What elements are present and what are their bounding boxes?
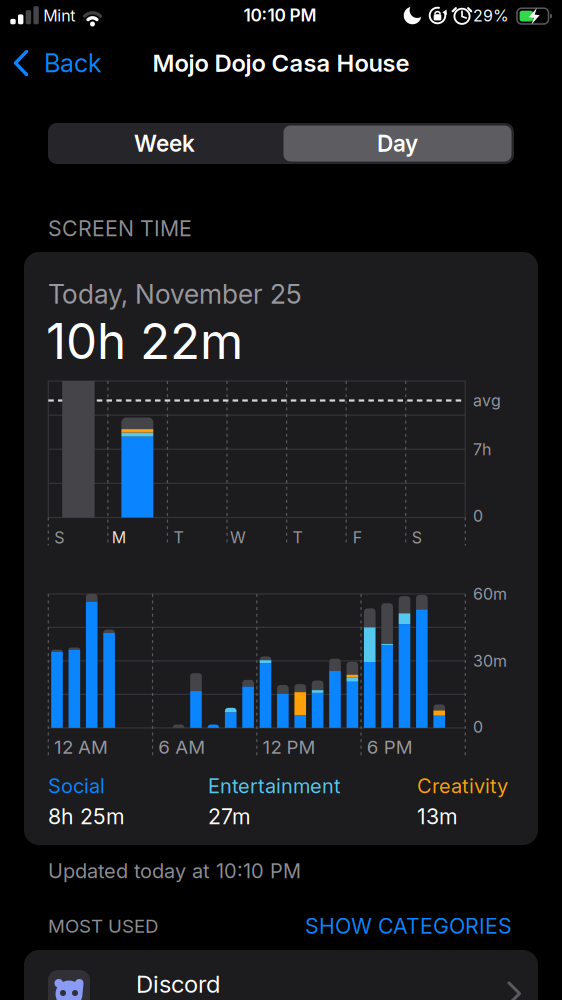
button[interactable]: Discord (24, 950, 538, 1000)
staticText: Day (377, 130, 418, 157)
staticText: 13m (417, 804, 458, 829)
button[interactable]: Back (6, 42, 116, 86)
staticText: M (112, 528, 126, 547)
staticText: Entertainment (208, 774, 341, 798)
staticText: 12 PM (262, 736, 315, 758)
staticText: 10:10 PM (243, 5, 316, 25)
staticText: 6 PM (367, 736, 413, 758)
staticText: Mojo Dojo Casa House (152, 49, 409, 77)
staticText: 0 (473, 718, 483, 736)
staticText: T (173, 528, 183, 547)
staticText: SHOW CATEGORIES (305, 913, 512, 939)
button[interactable]: Day (281, 123, 514, 164)
staticText: Back (44, 48, 102, 78)
staticText: 0 (473, 507, 483, 525)
staticText: 8h 25m (48, 804, 125, 829)
staticText: 29% (473, 6, 509, 25)
staticText: Creativity (417, 774, 508, 798)
staticText: Social (48, 774, 105, 798)
button[interactable]: Week (48, 123, 281, 164)
staticText: W (230, 528, 246, 547)
button[interactable]: SHOW CATEGORIES (282, 908, 512, 944)
staticText: F (353, 528, 362, 547)
staticText: MOST USED (48, 915, 158, 937)
staticText: Week (134, 130, 195, 157)
staticText: Mint (43, 6, 75, 25)
staticText: 6 AM (158, 736, 205, 758)
staticText: avg (473, 391, 501, 410)
staticText: Discord (136, 970, 220, 998)
staticText: Updated today at 10:10 PM (48, 859, 301, 883)
staticText: S (54, 528, 64, 547)
staticText: Today, November 25 (48, 278, 302, 310)
staticText: 12 AM (54, 736, 108, 758)
staticText: 10h 22m (46, 312, 243, 370)
staticText: 60m (473, 585, 507, 603)
staticText: 7h (473, 440, 491, 459)
staticText: T (293, 528, 303, 547)
staticText: SCREEN TIME (48, 216, 192, 241)
staticText: S (412, 528, 422, 547)
staticText: 30m (473, 652, 507, 670)
staticText: 27m (208, 804, 251, 829)
